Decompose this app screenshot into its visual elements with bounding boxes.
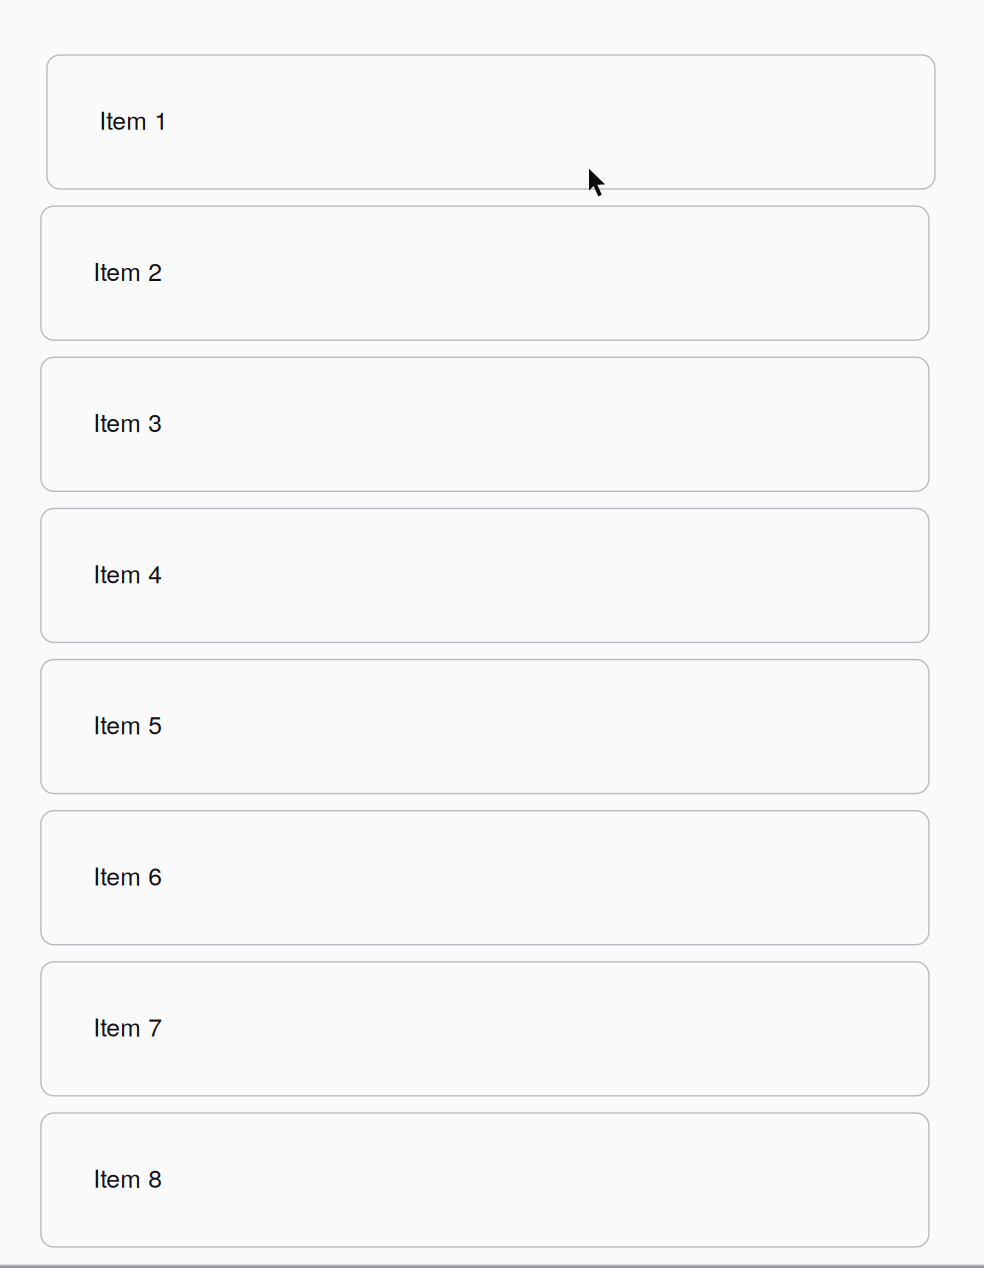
staticText: Item 2 bbox=[93, 253, 162, 288]
staticText: Item 8 bbox=[93, 1159, 162, 1195]
button[interactable]: Item 1 bbox=[47, 55, 935, 189]
button[interactable]: Item 3 bbox=[41, 357, 929, 491]
button[interactable]: Item 4 bbox=[41, 508, 929, 642]
staticText: Item 4 bbox=[93, 555, 162, 590]
staticText: Item 3 bbox=[93, 404, 162, 439]
staticText: Item 1 bbox=[99, 101, 168, 137]
button[interactable]: Item 8 bbox=[41, 1113, 929, 1247]
button[interactable]: Item 7 bbox=[41, 962, 929, 1096]
staticText: Item 7 bbox=[93, 1008, 162, 1044]
staticText: Item 6 bbox=[93, 857, 162, 892]
staticText: Item 5 bbox=[93, 706, 162, 741]
button[interactable]: Item 2 bbox=[41, 206, 929, 340]
button[interactable]: Item 5 bbox=[41, 660, 929, 794]
button[interactable]: Item 6 bbox=[41, 811, 929, 945]
